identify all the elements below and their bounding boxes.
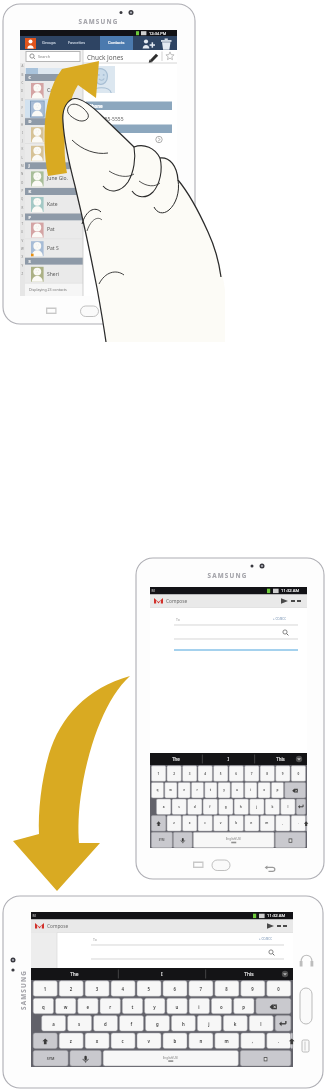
button[interactable]: Groups section	[86, 124, 174, 134]
button[interactable]: Edit contact	[149, 51, 162, 63]
button[interactable]: Send	[258, 921, 285, 934]
button[interactable]: Dor	[25, 144, 83, 163]
button[interactable]: Add to favorites	[162, 51, 174, 63]
button[interactable]: Compose	[31, 921, 91, 934]
button[interactable]: Chuck Jones	[25, 99, 83, 118]
button[interactable]: To field	[178, 610, 298, 622]
button[interactable]: Compose	[150, 594, 210, 607]
button[interactable]: Home	[208, 855, 236, 865]
button[interactable]: Delete contact	[159, 38, 174, 50]
button[interactable]: Favorites tab	[68, 36, 100, 50]
button[interactable]: Add contact	[140, 38, 156, 50]
button[interactable]: Kate	[25, 196, 83, 215]
button[interactable]: Send	[280, 594, 307, 607]
button[interactable]: Search contacts	[26, 51, 80, 61]
button[interactable]: Groups tab	[42, 36, 68, 50]
button[interactable]: Pat	[25, 222, 83, 241]
button[interactable]: June Glo.	[25, 170, 83, 189]
button[interactable]: Sheri	[25, 267, 83, 286]
button[interactable]: Contacts tab	[100, 36, 133, 50]
button[interactable]: Phone section	[86, 101, 174, 111]
button[interactable]: Home	[79, 299, 107, 309]
button[interactable]: Carl S	[25, 80, 83, 99]
button[interactable]: Pat S	[25, 241, 83, 260]
button[interactable]: Contacts app icon	[20, 36, 31, 50]
button[interactable]: Contact D	[25, 125, 83, 144]
button[interactable]: Recent apps	[40, 301, 52, 310]
